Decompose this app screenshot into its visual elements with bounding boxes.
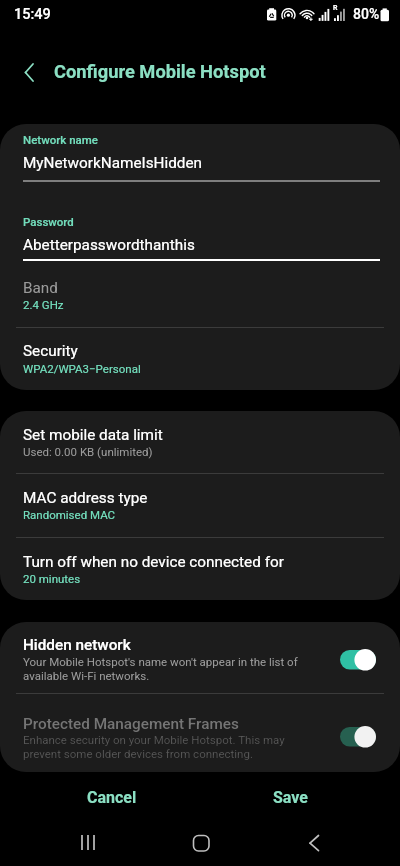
button[interactable]: Back (292, 821, 336, 865)
button[interactable]: Home (179, 821, 223, 865)
staticText: Used: 0.00 KB (unlimited) (23, 445, 153, 458)
button[interactable]: Cancel (24, 780, 200, 814)
staticText: Enhance security on your Mobile Hotspot.… (23, 733, 293, 761)
staticText: Hidden network (23, 636, 131, 654)
staticText: Abetterpasswordthanthis (23, 236, 195, 254)
staticText: Cancel (87, 788, 137, 807)
button[interactable]: Recent apps (66, 821, 110, 865)
button[interactable] (0, 124, 400, 219)
button[interactable] (0, 219, 400, 274)
staticText: Configure Mobile Hotspot (54, 61, 266, 82)
staticText: Your Mobile Hotspot's name won't appear … (23, 655, 313, 683)
button[interactable]: Toggle (339, 725, 379, 749)
staticText: Network name (23, 133, 98, 146)
button[interactable] (0, 274, 400, 327)
button[interactable] (0, 694, 400, 772)
button[interactable] (0, 411, 400, 473)
button[interactable]: Back (7, 50, 52, 95)
staticText: 20 minutes (23, 572, 81, 585)
staticText: WPA2/WPA3−Personal (23, 362, 141, 375)
staticText: Protected Management Frames (23, 715, 239, 733)
button[interactable]: Save (202, 780, 378, 814)
staticText: Security (23, 342, 78, 360)
staticText: Band (23, 279, 58, 297)
staticText: Turn off when no device connected for (23, 553, 284, 571)
staticText: 2.4 GHz (23, 298, 64, 311)
button[interactable] (0, 622, 400, 693)
staticText: Save (273, 788, 308, 807)
staticText: Password (23, 215, 74, 228)
staticText: R (333, 4, 338, 12)
button[interactable] (0, 538, 400, 600)
staticText: Randomised MAC (23, 508, 116, 521)
button[interactable] (0, 328, 400, 390)
staticText: MyNetworkNameIsHidden (23, 154, 203, 172)
staticText: 15:49 (14, 6, 51, 23)
staticText: 80% (353, 6, 380, 22)
button[interactable]: Toggle on (339, 648, 379, 672)
staticText: MAC address type (23, 489, 148, 507)
staticText: Set mobile data limit (23, 426, 163, 444)
button[interactable] (0, 474, 400, 537)
